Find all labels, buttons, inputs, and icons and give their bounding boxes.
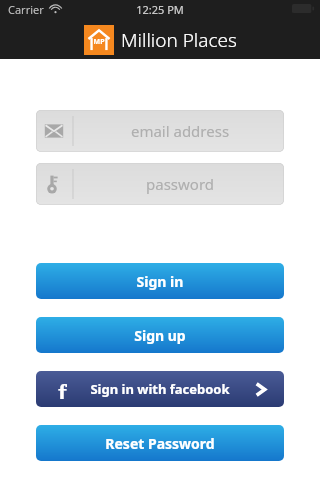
- staticText: email address: [76, 121, 284, 141]
- staticText: Sign up: [36, 326, 284, 345]
- staticText: Carrier: [8, 2, 44, 17]
- other: Password: [36, 163, 72, 205]
- staticText: Sign in: [36, 272, 284, 291]
- button[interactable]: Sign in: [36, 263, 284, 299]
- button[interactable]: Sign up: [36, 317, 284, 353]
- button[interactable]: Reset Password: [36, 425, 284, 461]
- staticText: Million Places: [121, 27, 237, 53]
- staticText: 12:25 PM: [0, 2, 320, 17]
- staticText: Sign in with facebook: [36, 380, 284, 398]
- button[interactable]: Email address: [36, 110, 284, 152]
- staticText: MP: [84, 37, 114, 47]
- button[interactable]: f: [36, 371, 284, 407]
- staticText: f: [58, 379, 67, 399]
- staticText: Reset Password: [36, 434, 284, 453]
- button[interactable]: Password: [36, 163, 284, 205]
- other: Email address: [36, 110, 72, 152]
- staticText: password: [76, 174, 284, 194]
